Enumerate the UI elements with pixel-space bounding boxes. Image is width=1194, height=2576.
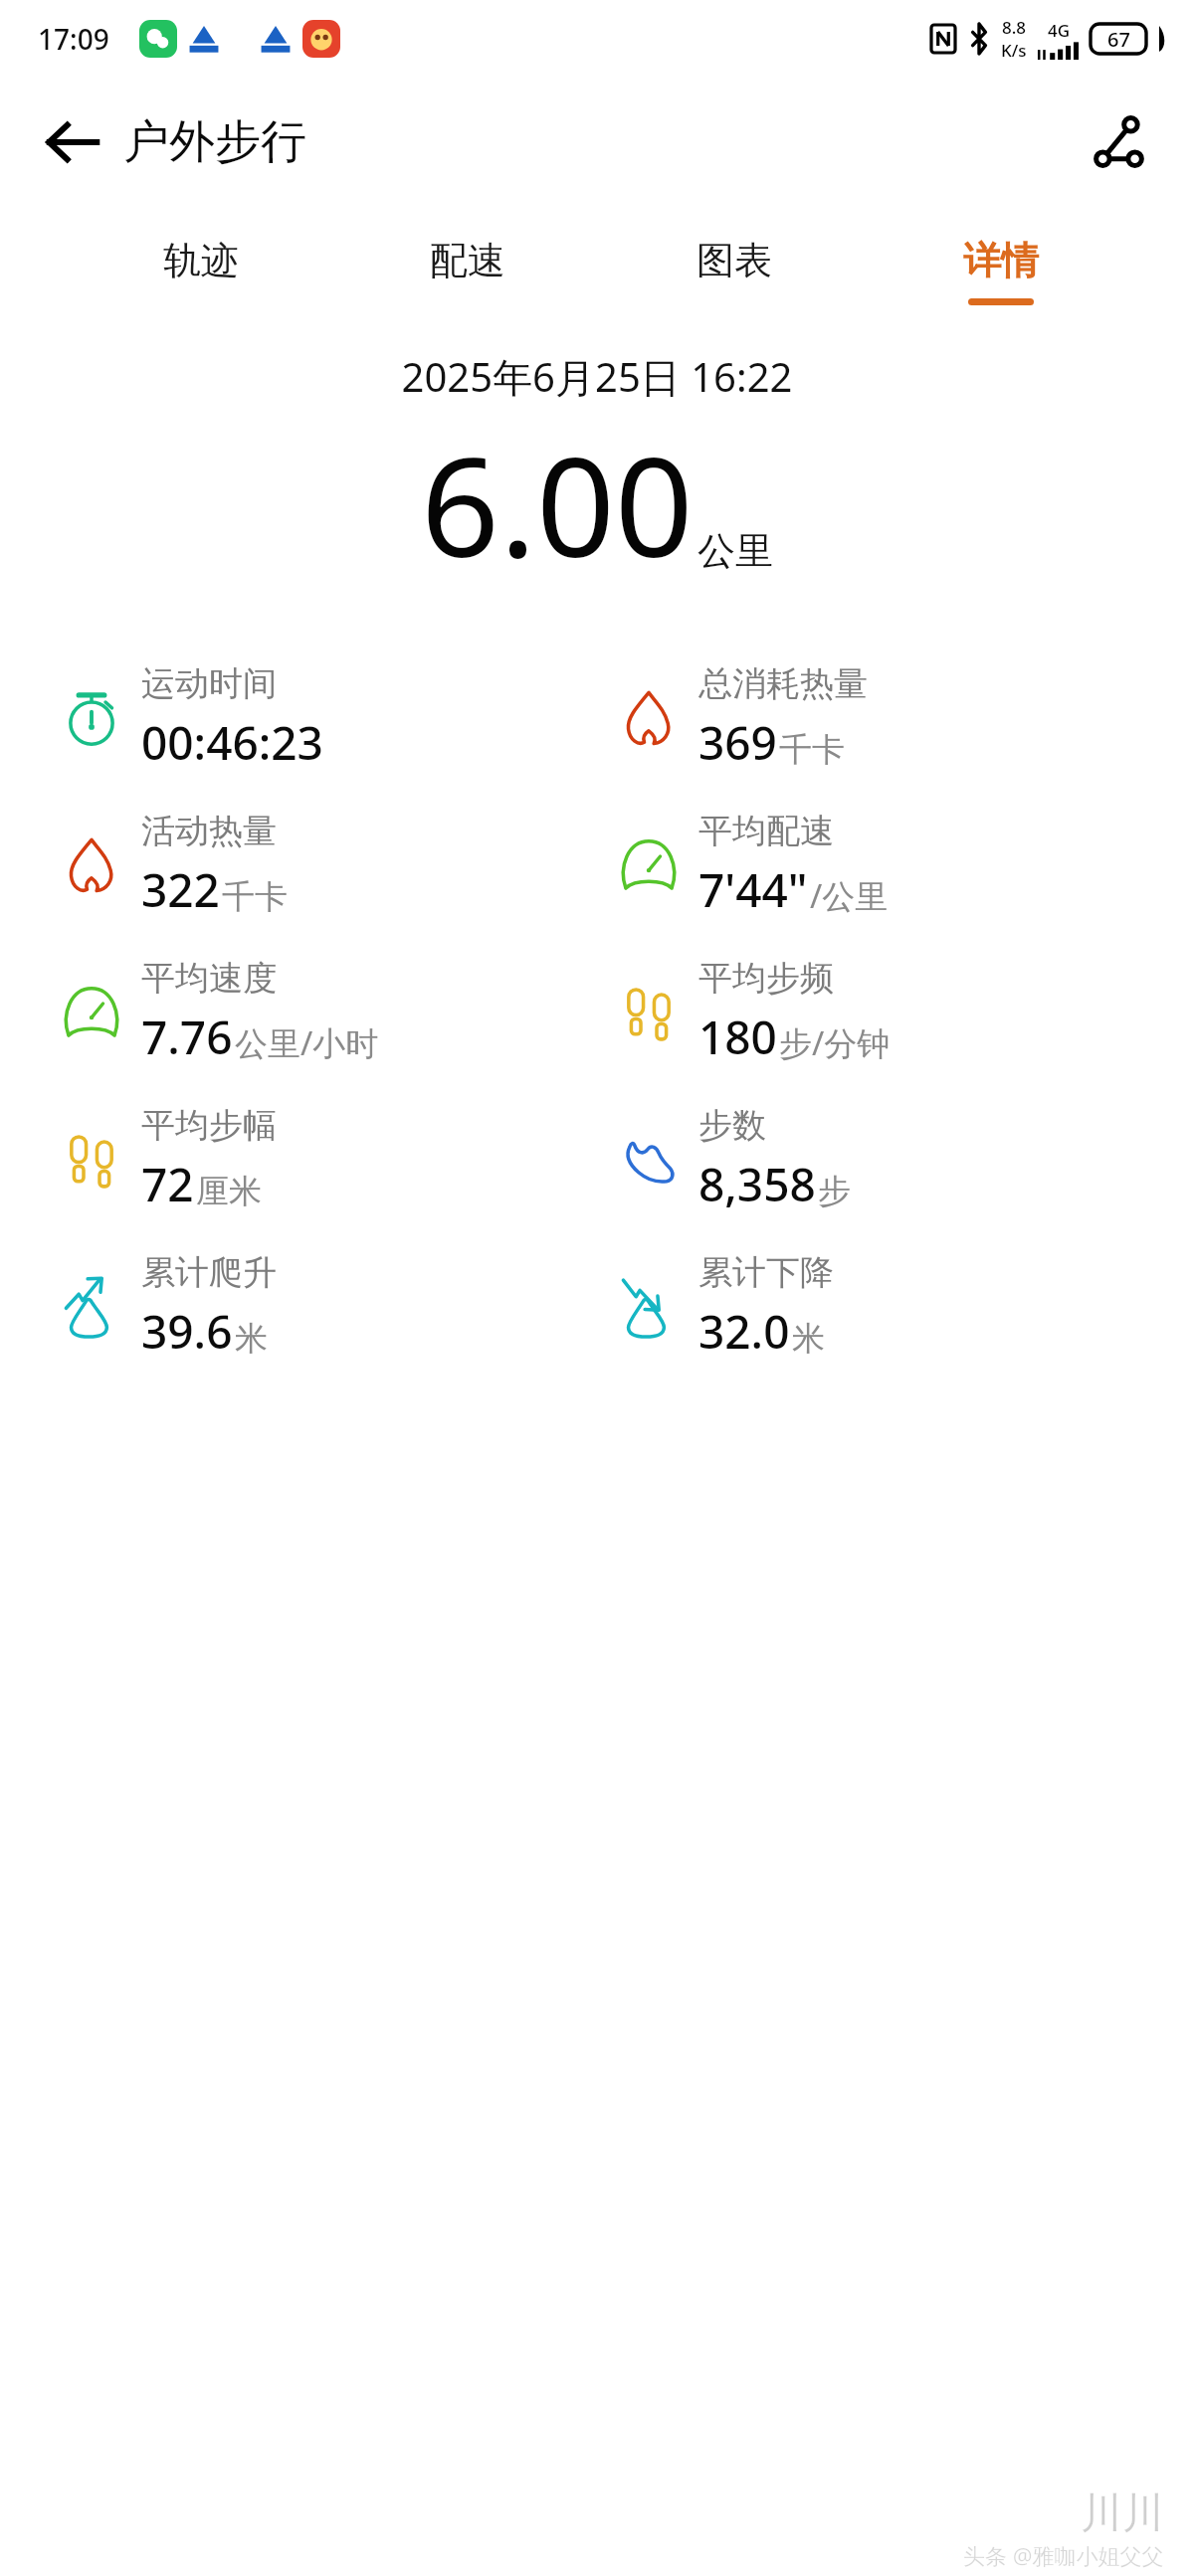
- button[interactable]: 平均步幅: [60, 1086, 597, 1233]
- staticText: 千卡: [222, 876, 288, 918]
- staticText: 步数: [698, 1104, 766, 1147]
- staticText: 4G: [1048, 19, 1071, 42]
- staticText: 总消耗热量: [698, 662, 868, 705]
- staticText: 6.00: [421, 410, 694, 597]
- staticText: 累计爬升: [141, 1251, 277, 1294]
- staticText: 8,358: [698, 1153, 816, 1215]
- button[interactable]: 平均步频: [617, 939, 1194, 1086]
- button[interactable]: 活动热量: [60, 792, 597, 939]
- button[interactable]: 平均配速: [617, 792, 1194, 939]
- button[interactable]: Share: [1077, 99, 1162, 185]
- staticText: 39.6: [141, 1300, 233, 1363]
- staticText: 7.76: [141, 1006, 233, 1068]
- staticText: 米: [792, 1318, 825, 1360]
- staticText: 17:09: [38, 20, 109, 58]
- button[interactable]: 轨迹: [157, 233, 245, 309]
- staticText: 川川: [1081, 2487, 1164, 2540]
- staticText: 公里: [697, 527, 773, 575]
- button[interactable]: 配速: [424, 233, 511, 309]
- button[interactable]: Back: [30, 99, 115, 185]
- staticText: 米: [235, 1318, 268, 1360]
- staticText: 活动热量: [141, 810, 277, 852]
- staticText: 运动时间: [141, 662, 277, 705]
- staticText: 详情: [963, 237, 1039, 284]
- button[interactable]: 运动时间: [60, 644, 597, 792]
- staticText: 180: [698, 1006, 777, 1068]
- staticText: 累计下降: [698, 1251, 834, 1294]
- staticText: 平均步幅: [141, 1104, 277, 1147]
- button[interactable]: 累计爬升: [60, 1233, 597, 1380]
- button[interactable]: 详情: [957, 233, 1045, 309]
- staticText: 369: [698, 711, 777, 774]
- staticText: 轨迹: [163, 237, 239, 284]
- staticText: K/s: [1001, 39, 1027, 62]
- staticText: 00:46:23: [141, 711, 323, 774]
- staticText: 32.0: [698, 1300, 790, 1363]
- staticText: 公里/小时: [235, 1020, 379, 1065]
- button[interactable]: 步数: [617, 1086, 1194, 1233]
- staticText: 平均速度: [141, 957, 277, 1000]
- staticText: /公里: [810, 873, 889, 918]
- staticText: 322: [141, 858, 220, 921]
- button[interactable]: 平均速度: [60, 939, 597, 1086]
- staticText: 7'44": [698, 858, 808, 921]
- staticText: 步/分钟: [779, 1020, 891, 1065]
- staticText: 72: [141, 1153, 194, 1215]
- staticText: 厘米: [196, 1171, 262, 1212]
- button[interactable]: 图表: [691, 233, 778, 309]
- staticText: 平均步频: [698, 957, 834, 1000]
- staticText: 8.8: [1002, 16, 1027, 39]
- staticText: 户外步行: [123, 113, 306, 171]
- staticText: 67: [1107, 26, 1130, 53]
- staticText: 步: [818, 1171, 851, 1212]
- button[interactable]: 总消耗热量: [617, 644, 1194, 792]
- staticText: 平均配速: [698, 810, 834, 852]
- staticText: 2025年6月25日 16:22: [0, 349, 1194, 404]
- staticText: 头条 @雅咖小姐父父: [963, 2540, 1164, 2570]
- button[interactable]: 累计下降: [617, 1233, 1194, 1380]
- staticText: 配速: [430, 237, 505, 284]
- staticText: 图表: [696, 237, 772, 284]
- staticText: 千卡: [779, 729, 845, 771]
